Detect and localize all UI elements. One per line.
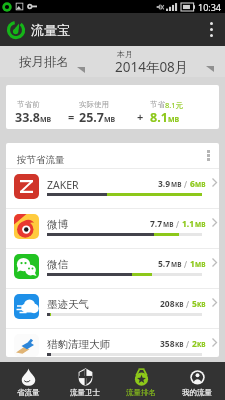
button[interactable]: 我的流量	[169, 362, 225, 400]
staticText: 3.9	[158, 178, 171, 190]
staticText: 按节省流量	[17, 154, 65, 166]
button[interactable]: 省流量	[0, 362, 57, 400]
staticText: 猎豹清理大师	[47, 338, 110, 351]
staticText: 2	[192, 338, 197, 350]
staticText: 8.1元	[165, 100, 184, 110]
staticText: 本月	[117, 49, 133, 59]
staticText: =	[68, 109, 75, 124]
staticText: 6	[190, 178, 195, 190]
staticText: MB	[195, 260, 206, 269]
staticText: ZAKER	[47, 178, 79, 192]
staticText: /	[182, 179, 190, 190]
button[interactable]: 流量排名	[113, 362, 169, 400]
staticText: MB	[163, 220, 174, 229]
staticText: 省流量	[17, 388, 40, 397]
button[interactable]: 猎豹清理大师	[6, 329, 219, 357]
staticText: 1.1	[182, 218, 195, 230]
button[interactable]: 本月	[100, 46, 225, 77]
staticText: 按月排名	[19, 54, 69, 70]
staticText: /	[182, 259, 190, 270]
staticText: MB	[40, 115, 52, 125]
staticText: MB	[104, 115, 116, 125]
staticText: 25.7	[79, 109, 104, 126]
staticText: 节省	[150, 100, 165, 109]
staticText: 我的流量	[182, 388, 212, 397]
staticText: 微信	[47, 258, 68, 271]
staticText: 流量卫士	[70, 388, 100, 397]
staticText: +	[137, 109, 144, 124]
staticText: 1	[190, 258, 195, 270]
staticText: 10:34	[198, 1, 222, 13]
staticText: 节省前	[17, 100, 40, 109]
button[interactable]: 按月排名	[0, 46, 100, 77]
staticText: 358	[160, 338, 175, 350]
staticText: MB	[195, 180, 206, 189]
staticText: 墨迹天气	[47, 298, 89, 311]
staticText: KB	[197, 300, 206, 309]
staticText: 208	[160, 298, 175, 310]
staticText: 流量宝	[31, 22, 70, 38]
button[interactable]: 微信	[6, 249, 219, 288]
button[interactable]: 墨迹天气	[6, 289, 219, 328]
button[interactable]: 流量卫士	[57, 362, 113, 400]
staticText: MB	[168, 115, 180, 125]
staticText: 微博	[47, 218, 68, 231]
staticText: MB	[171, 180, 182, 189]
button[interactable]: Sort options	[197, 143, 219, 168]
staticText: /	[184, 299, 192, 310]
staticText: KB	[197, 340, 206, 349]
staticText: 5	[192, 298, 197, 310]
staticText: KB	[175, 300, 184, 309]
staticText: 7.7	[150, 218, 163, 230]
staticText: 8.1	[150, 109, 168, 126]
staticText: 实际使用	[79, 100, 109, 109]
button[interactable]: 微博	[6, 209, 219, 248]
staticText: /	[184, 339, 192, 350]
staticText: 5.7	[158, 258, 171, 270]
staticText: 2014年08月	[115, 58, 189, 76]
button[interactable]: ZAKER	[6, 169, 219, 208]
button[interactable]: More options	[197, 13, 225, 46]
staticText: 流量排名	[126, 388, 156, 397]
staticText: MB	[171, 260, 182, 269]
staticText: MB	[195, 220, 206, 229]
staticText: /	[174, 219, 182, 230]
staticText: KB	[175, 340, 184, 349]
staticText: 33.8	[15, 109, 40, 126]
